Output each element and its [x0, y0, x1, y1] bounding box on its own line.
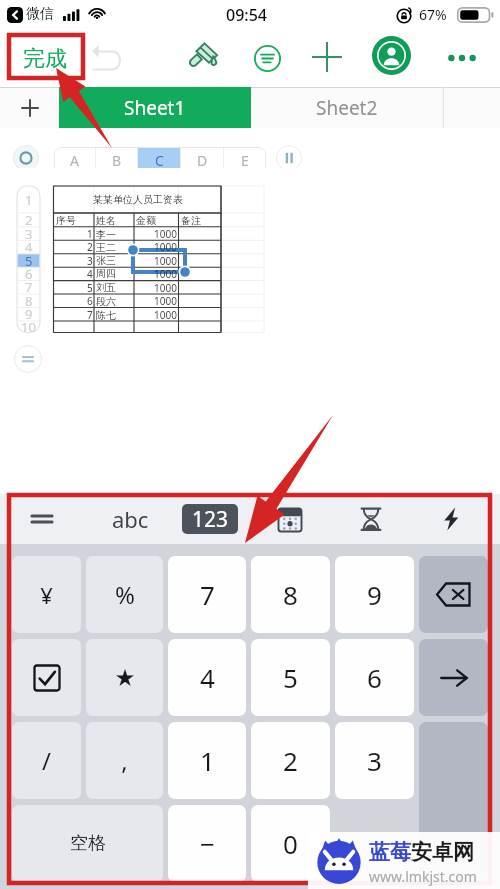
button[interactable]: Date — [277, 507, 303, 533]
staticText: 陈七 — [96, 309, 116, 322]
staticText: 张三 — [96, 254, 116, 267]
button[interactable]: / — [12, 722, 81, 799]
staticText: 1000 — [154, 294, 177, 308]
staticText: 0 — [283, 826, 298, 861]
staticText: 123 — [192, 505, 229, 534]
staticText: 蓝莓 — [369, 839, 411, 865]
staticText: E — [241, 151, 249, 170]
button[interactable]: 4 — [168, 639, 246, 716]
button[interactable]: 完成 — [12, 44, 78, 74]
button[interactable]: Select all — [13, 145, 39, 171]
button[interactable]: Insert — [310, 40, 344, 74]
button[interactable]: ¥ — [12, 556, 81, 633]
staticText: % — [115, 578, 135, 611]
button[interactable]: abc — [100, 502, 160, 536]
staticText: 金额 — [136, 214, 156, 227]
staticText: 9 — [367, 577, 382, 612]
staticText: 1000 — [154, 308, 177, 322]
button[interactable]: Undo — [90, 41, 124, 75]
button[interactable]: 2 — [251, 722, 330, 799]
button[interactable]: Enter — [419, 722, 488, 882]
staticText: D — [197, 151, 208, 170]
button[interactable]: Time — [358, 506, 384, 532]
staticText: , — [121, 744, 128, 777]
button[interactable]: Format painter — [186, 39, 220, 73]
staticText: 王二 — [96, 241, 116, 254]
staticText: 5 — [283, 660, 298, 695]
button[interactable]: A — [54, 147, 95, 174]
staticText: 姓名 — [96, 214, 116, 227]
button[interactable]: Formula — [14, 345, 42, 373]
button[interactable]: , — [86, 722, 163, 799]
button[interactable]: Add sheet — [0, 87, 59, 128]
button[interactable]: ★ — [86, 639, 163, 716]
staticText: 2 — [25, 211, 33, 229]
staticText: 2 — [283, 743, 298, 778]
button[interactable]: Keyboard settings — [30, 507, 54, 531]
staticText: 微信 — [26, 5, 54, 23]
button[interactable]: More options — [443, 48, 481, 68]
button[interactable]: 0 — [251, 805, 330, 882]
staticText: 4 — [200, 660, 215, 695]
button[interactable]: C — [138, 147, 180, 174]
staticText: 4 — [87, 267, 93, 280]
button[interactable]: Sheet2 — [251, 87, 443, 128]
staticText: Sheet1 — [124, 95, 186, 121]
staticText: B — [112, 151, 122, 170]
staticText: Sheet2 — [316, 95, 378, 121]
staticText: 安卓网 — [411, 839, 474, 865]
staticText: 7 — [87, 308, 93, 322]
staticText: 4 — [25, 238, 33, 256]
staticText: 09:54 — [226, 4, 267, 26]
button[interactable]: D — [181, 147, 223, 174]
staticText: 1000 — [154, 240, 177, 254]
staticText: 李一 — [96, 228, 116, 241]
staticText: A — [70, 151, 79, 170]
staticText: 1 — [200, 743, 215, 778]
staticText: ★ — [114, 664, 136, 692]
button[interactable] — [419, 556, 488, 633]
button[interactable]: 5 — [251, 639, 330, 716]
button[interactable]: Sort and filter — [250, 41, 284, 75]
button[interactable]: E — [224, 147, 266, 174]
staticText: 3 — [87, 254, 93, 267]
button[interactable]: Pause — [276, 145, 302, 171]
button[interactable]: 空格 — [12, 805, 163, 882]
button[interactable] — [12, 639, 81, 716]
staticText: 6 — [87, 294, 93, 308]
staticText: 5 — [87, 281, 93, 294]
button[interactable]: 1 — [168, 722, 246, 799]
staticText: 1 — [87, 227, 93, 241]
staticText: 6 — [25, 265, 33, 283]
staticText: 某某单位人员工资表 — [93, 193, 183, 206]
staticText: 6 — [367, 660, 382, 695]
staticText: 1000 — [154, 267, 177, 280]
staticText: 2 — [87, 240, 93, 254]
button[interactable]: % — [86, 556, 163, 633]
button[interactable]: B — [96, 147, 137, 174]
staticText: 完成 — [23, 45, 67, 73]
button[interactable] — [419, 639, 488, 716]
button[interactable]: − — [168, 805, 246, 882]
staticText: 7 — [200, 577, 215, 612]
staticText: 7 — [25, 278, 33, 296]
button[interactable]: 7 — [168, 556, 246, 633]
button[interactable]: Sheet1 — [59, 87, 251, 128]
staticText: 1000 — [154, 227, 177, 241]
button[interactable]: 3 — [335, 722, 414, 799]
staticText: 段六 — [96, 295, 116, 308]
button[interactable]: Account — [371, 35, 412, 76]
staticText: − — [200, 826, 215, 861]
staticText: ¥ — [40, 580, 53, 610]
staticText: 10 — [21, 318, 36, 336]
button[interactable]: 9 — [335, 556, 414, 633]
button[interactable]: 8 — [251, 556, 330, 633]
staticText: 刘五 — [96, 281, 116, 294]
staticText: www.lmkjst.com — [369, 867, 477, 886]
staticText: 3 — [25, 225, 33, 243]
button[interactable]: Shortcuts — [438, 506, 464, 532]
staticText: 1000 — [154, 281, 177, 294]
button[interactable]: 123 — [182, 504, 238, 534]
staticText: 8 — [25, 292, 33, 310]
button[interactable]: 6 — [335, 639, 414, 716]
